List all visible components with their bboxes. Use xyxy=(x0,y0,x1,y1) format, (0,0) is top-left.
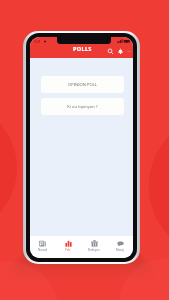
button[interactable]: Notifications xyxy=(117,48,124,55)
staticText: Nouvel xyxy=(38,248,48,252)
staticText: Eleksyon xyxy=(88,248,100,252)
button[interactable]: Search xyxy=(107,48,114,55)
staticText: Ki ou lopinyon ? xyxy=(67,104,98,110)
button[interactable]: More options xyxy=(127,49,132,54)
staticText: OPINION POLL xyxy=(68,82,97,88)
button[interactable]: Ki ou lopinyon ? xyxy=(41,98,124,115)
button[interactable]: Pols xyxy=(55,236,81,258)
staticText: 9:41 xyxy=(34,39,41,44)
staticText: Mesaj xyxy=(116,248,124,252)
button[interactable]: Eleksyon xyxy=(81,236,107,258)
button[interactable]: Nouvel xyxy=(30,236,55,258)
staticText: Pols xyxy=(65,248,71,252)
button[interactable]: Mesaj xyxy=(107,236,133,258)
staticText: POLLS xyxy=(73,45,92,53)
button[interactable]: OPINION POLL xyxy=(41,76,124,93)
